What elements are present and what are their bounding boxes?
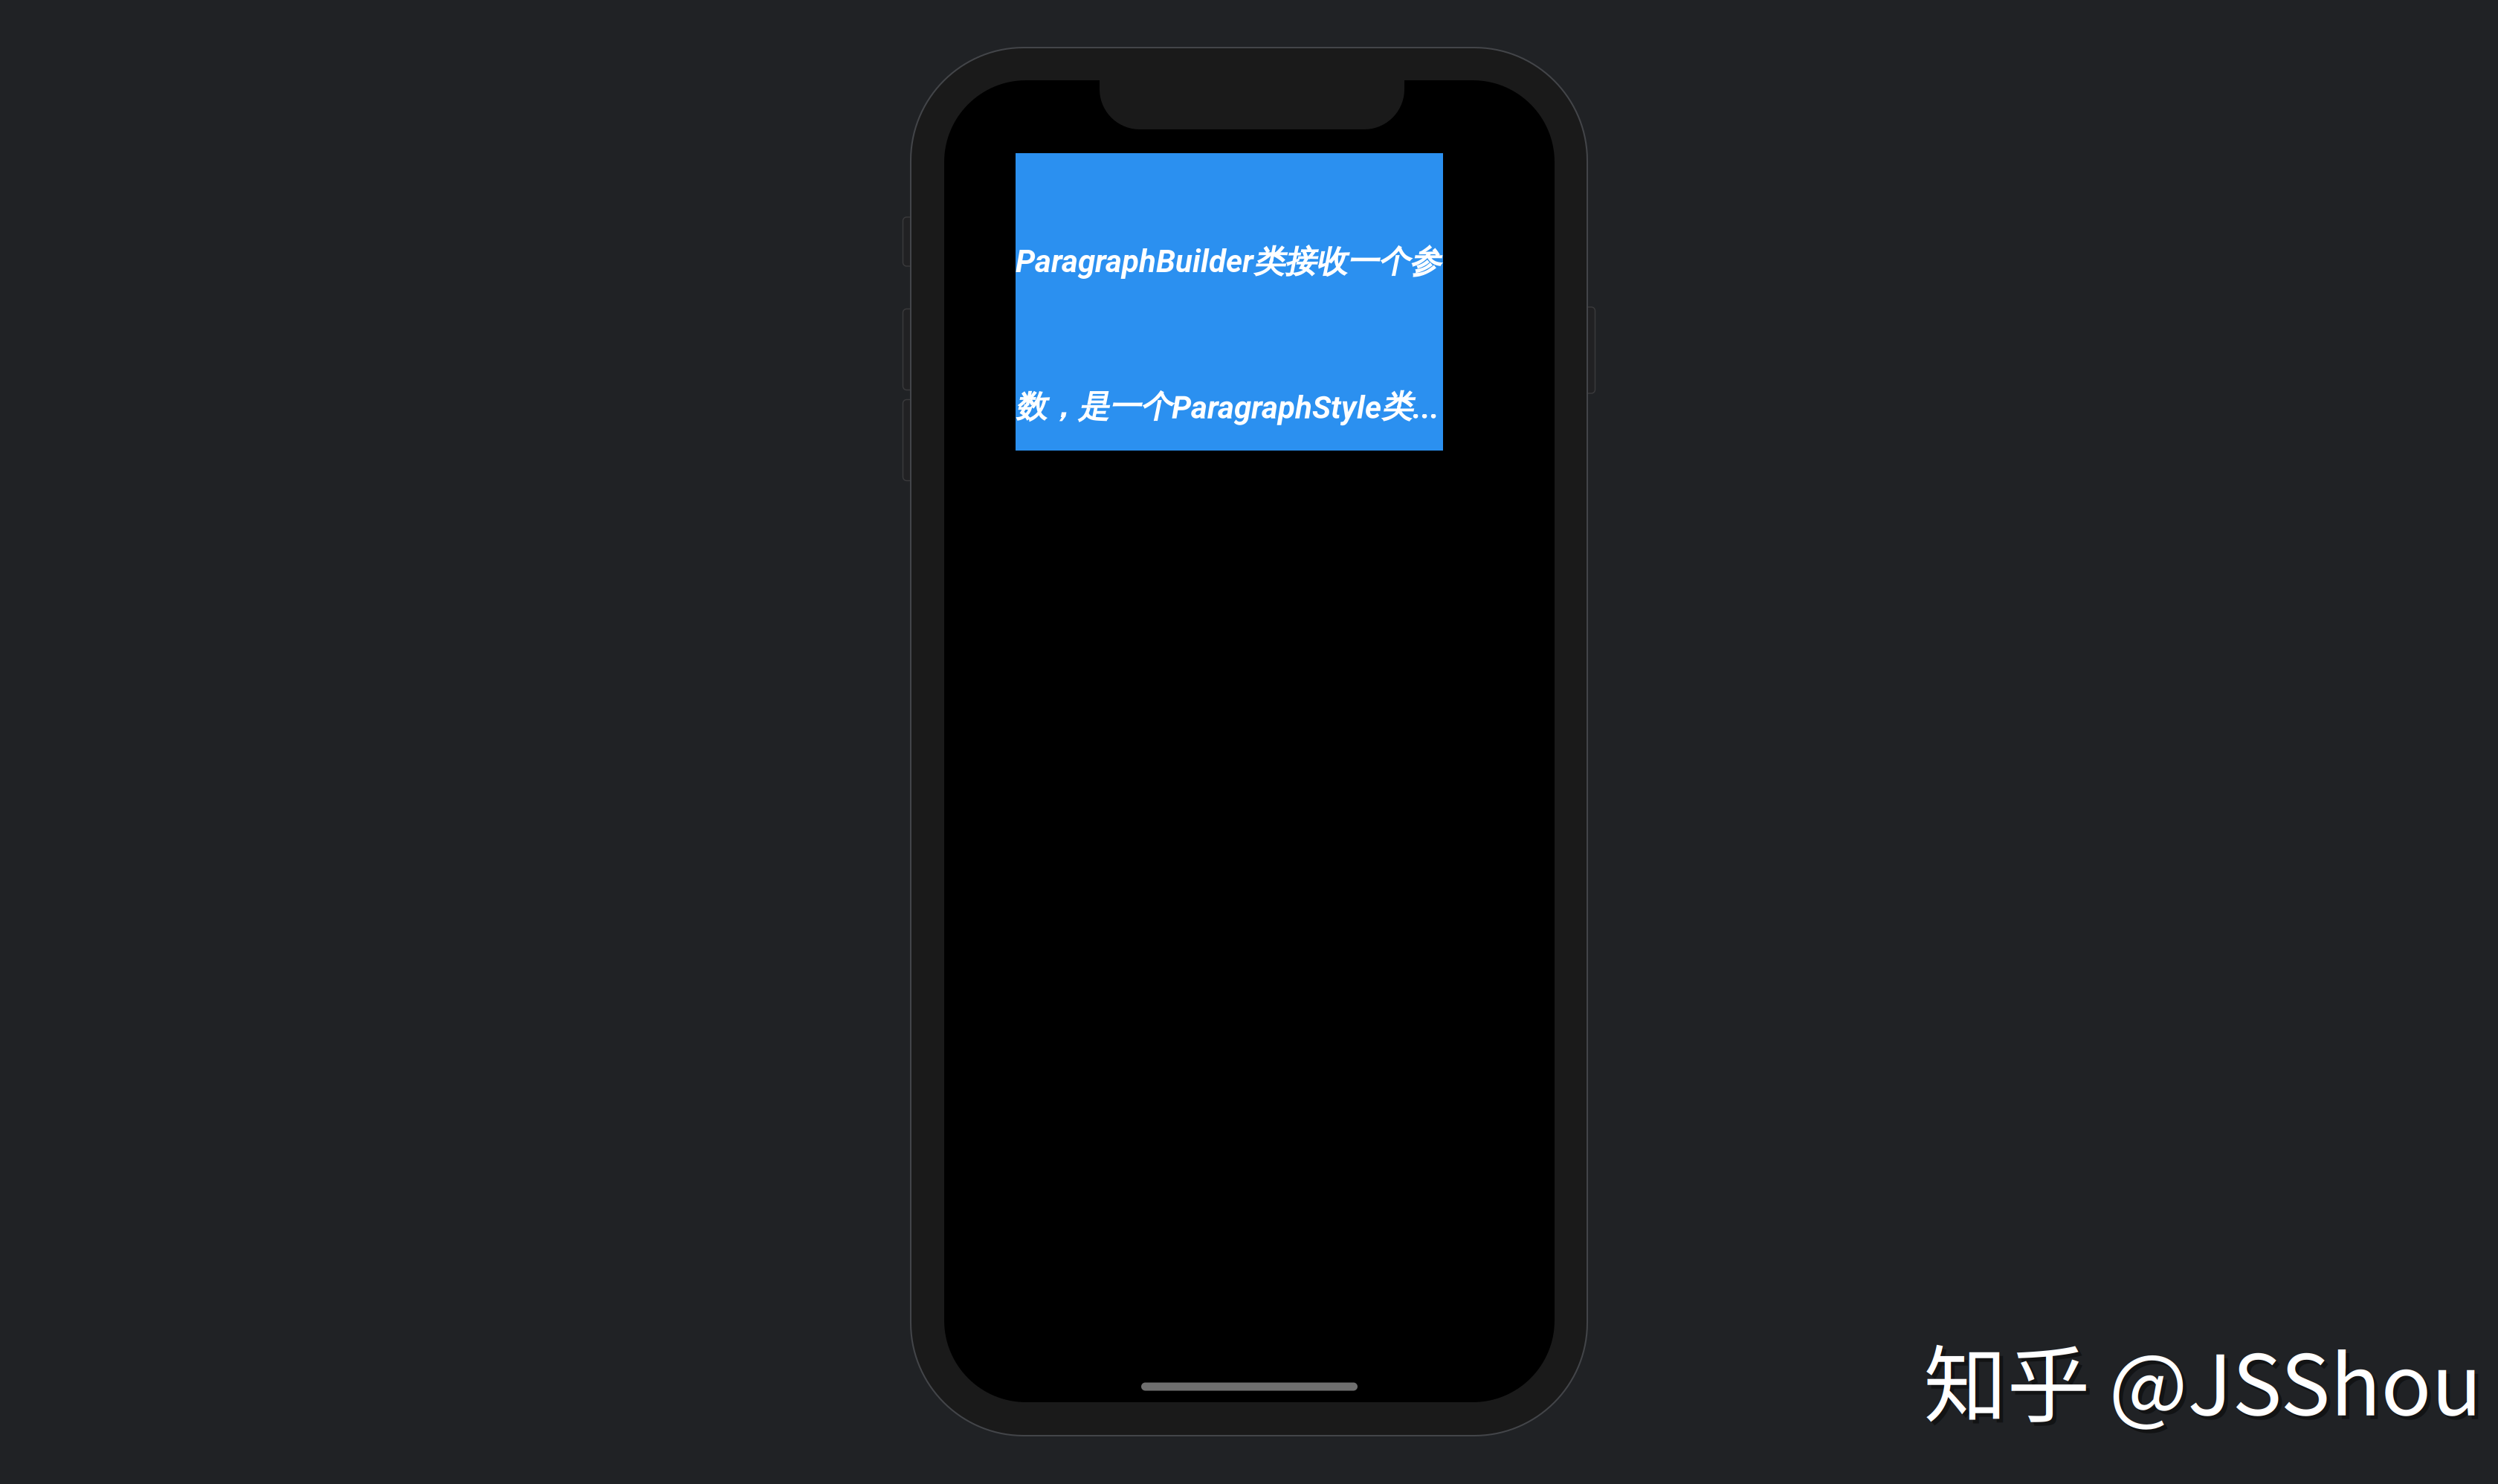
staticText: ParagraphBuilder类接收一个参 — [1016, 242, 1441, 281]
staticText: 数，是一个ParagraphStyle类... — [1016, 387, 1439, 426]
staticText: 知乎 @JSShou — [1927, 1323, 2486, 1443]
staticText: 知乎 @JSShou — [1924, 1319, 2482, 1439]
